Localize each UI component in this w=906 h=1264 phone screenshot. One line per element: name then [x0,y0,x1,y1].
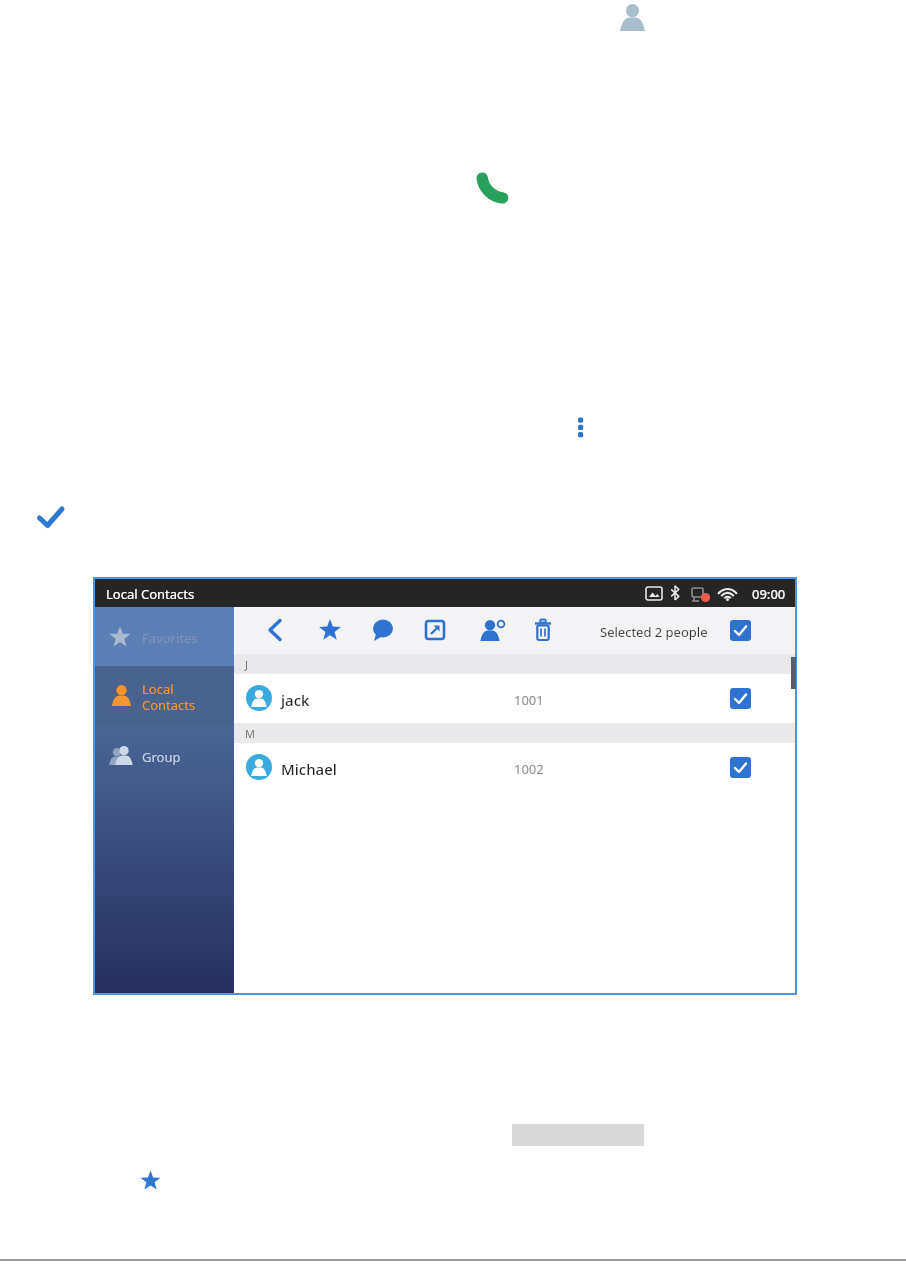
button[interactable] [420,615,450,645]
staticText: M [245,726,255,741]
button[interactable]: Local Contacts [95,666,234,726]
button[interactable] [730,620,751,641]
staticText: Local Contacts [142,680,196,713]
button[interactable] [730,757,751,778]
staticText: Group [142,748,181,766]
staticText: 1002 [514,760,544,778]
staticText: jack [281,690,310,710]
button[interactable]: Group [95,726,234,786]
staticText: Michael [281,759,337,779]
button[interactable]: Michael [234,743,795,792]
staticText: Favorites [142,629,198,647]
button[interactable]: jack [234,674,795,723]
button[interactable] [315,615,345,645]
button[interactable] [528,615,558,645]
staticText: Selected 2 people [600,623,708,641]
staticText: Local Contacts [106,585,195,603]
button[interactable] [730,688,751,709]
staticText: 09:00 [752,585,786,603]
button[interactable]: Favorites [95,607,234,666]
button[interactable] [477,615,509,645]
button[interactable] [368,615,398,645]
staticText: 1001 [514,691,544,709]
button[interactable] [260,615,290,645]
staticText: J [245,657,249,672]
